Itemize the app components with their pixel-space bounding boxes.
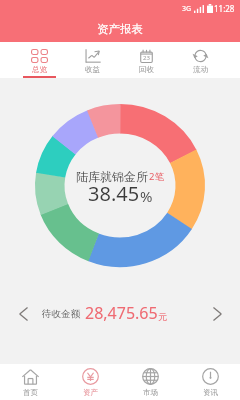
staticText: 23 xyxy=(143,54,150,62)
button[interactable]: 流动 xyxy=(173,42,227,78)
button[interactable]: Previous xyxy=(7,292,39,336)
staticText: 资产 xyxy=(83,388,98,397)
staticText: 流动 xyxy=(193,65,208,74)
staticText: 收益 xyxy=(85,65,100,74)
staticText: 待收金额 xyxy=(42,308,80,320)
staticText: 11:28 xyxy=(214,3,235,14)
button[interactable]: 23 xyxy=(119,42,173,78)
staticText: 陆库就锦金所 xyxy=(76,169,148,184)
staticText: 2笔 xyxy=(149,170,164,183)
button[interactable]: 收益 xyxy=(66,42,119,78)
staticText: 3G xyxy=(182,4,192,14)
button[interactable]: Next xyxy=(201,292,233,336)
button[interactable]: 首页 xyxy=(0,364,60,400)
button[interactable]: 总览 xyxy=(13,42,66,78)
staticText: 元 xyxy=(158,311,167,322)
staticText: 28,475.65 xyxy=(85,302,158,324)
staticText: 回收 xyxy=(139,65,154,74)
button[interactable]: 资讯 xyxy=(180,364,240,400)
staticText: 资讯 xyxy=(203,388,218,397)
staticText: 38.45 xyxy=(88,180,140,207)
staticText: 总览 xyxy=(32,65,47,74)
staticText: 首页 xyxy=(23,388,38,397)
staticText: 资产报表 xyxy=(97,22,143,36)
button[interactable]: 市场 xyxy=(120,364,180,400)
button[interactable]: 资产 xyxy=(60,364,120,400)
staticText: % xyxy=(140,186,153,206)
staticText: 市场 xyxy=(143,388,158,397)
